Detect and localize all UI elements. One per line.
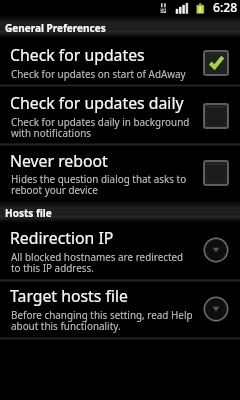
button[interactable]: Never reboot	[0, 145, 240, 201]
staticText: Hides the question dialog that asks to r…	[11, 172, 187, 197]
staticText: Before changing this setting, read Help …	[11, 308, 193, 333]
staticText: Check for updates on start of AdAway	[11, 67, 186, 80]
staticText: Check for updates daily in background wi…	[11, 115, 190, 140]
staticText: General Preferences	[5, 21, 106, 35]
staticText: Hosts file	[5, 206, 52, 220]
staticText: Target hosts file	[10, 285, 128, 307]
staticText: 6:28	[213, 0, 238, 16]
button[interactable]: Check for updates	[0, 37, 240, 86]
staticText: Never reboot	[10, 150, 108, 172]
button[interactable]: Target hosts file	[0, 280, 240, 338]
staticText: Redirection IP	[10, 227, 114, 249]
staticText: All blocked hostnames are redirected to …	[11, 250, 184, 275]
button[interactable]: Check for updates daily	[0, 86, 240, 145]
staticText: Check for updates	[10, 44, 145, 66]
button[interactable]: Redirection IP	[0, 222, 240, 280]
staticText: Check for updates daily	[10, 92, 184, 114]
